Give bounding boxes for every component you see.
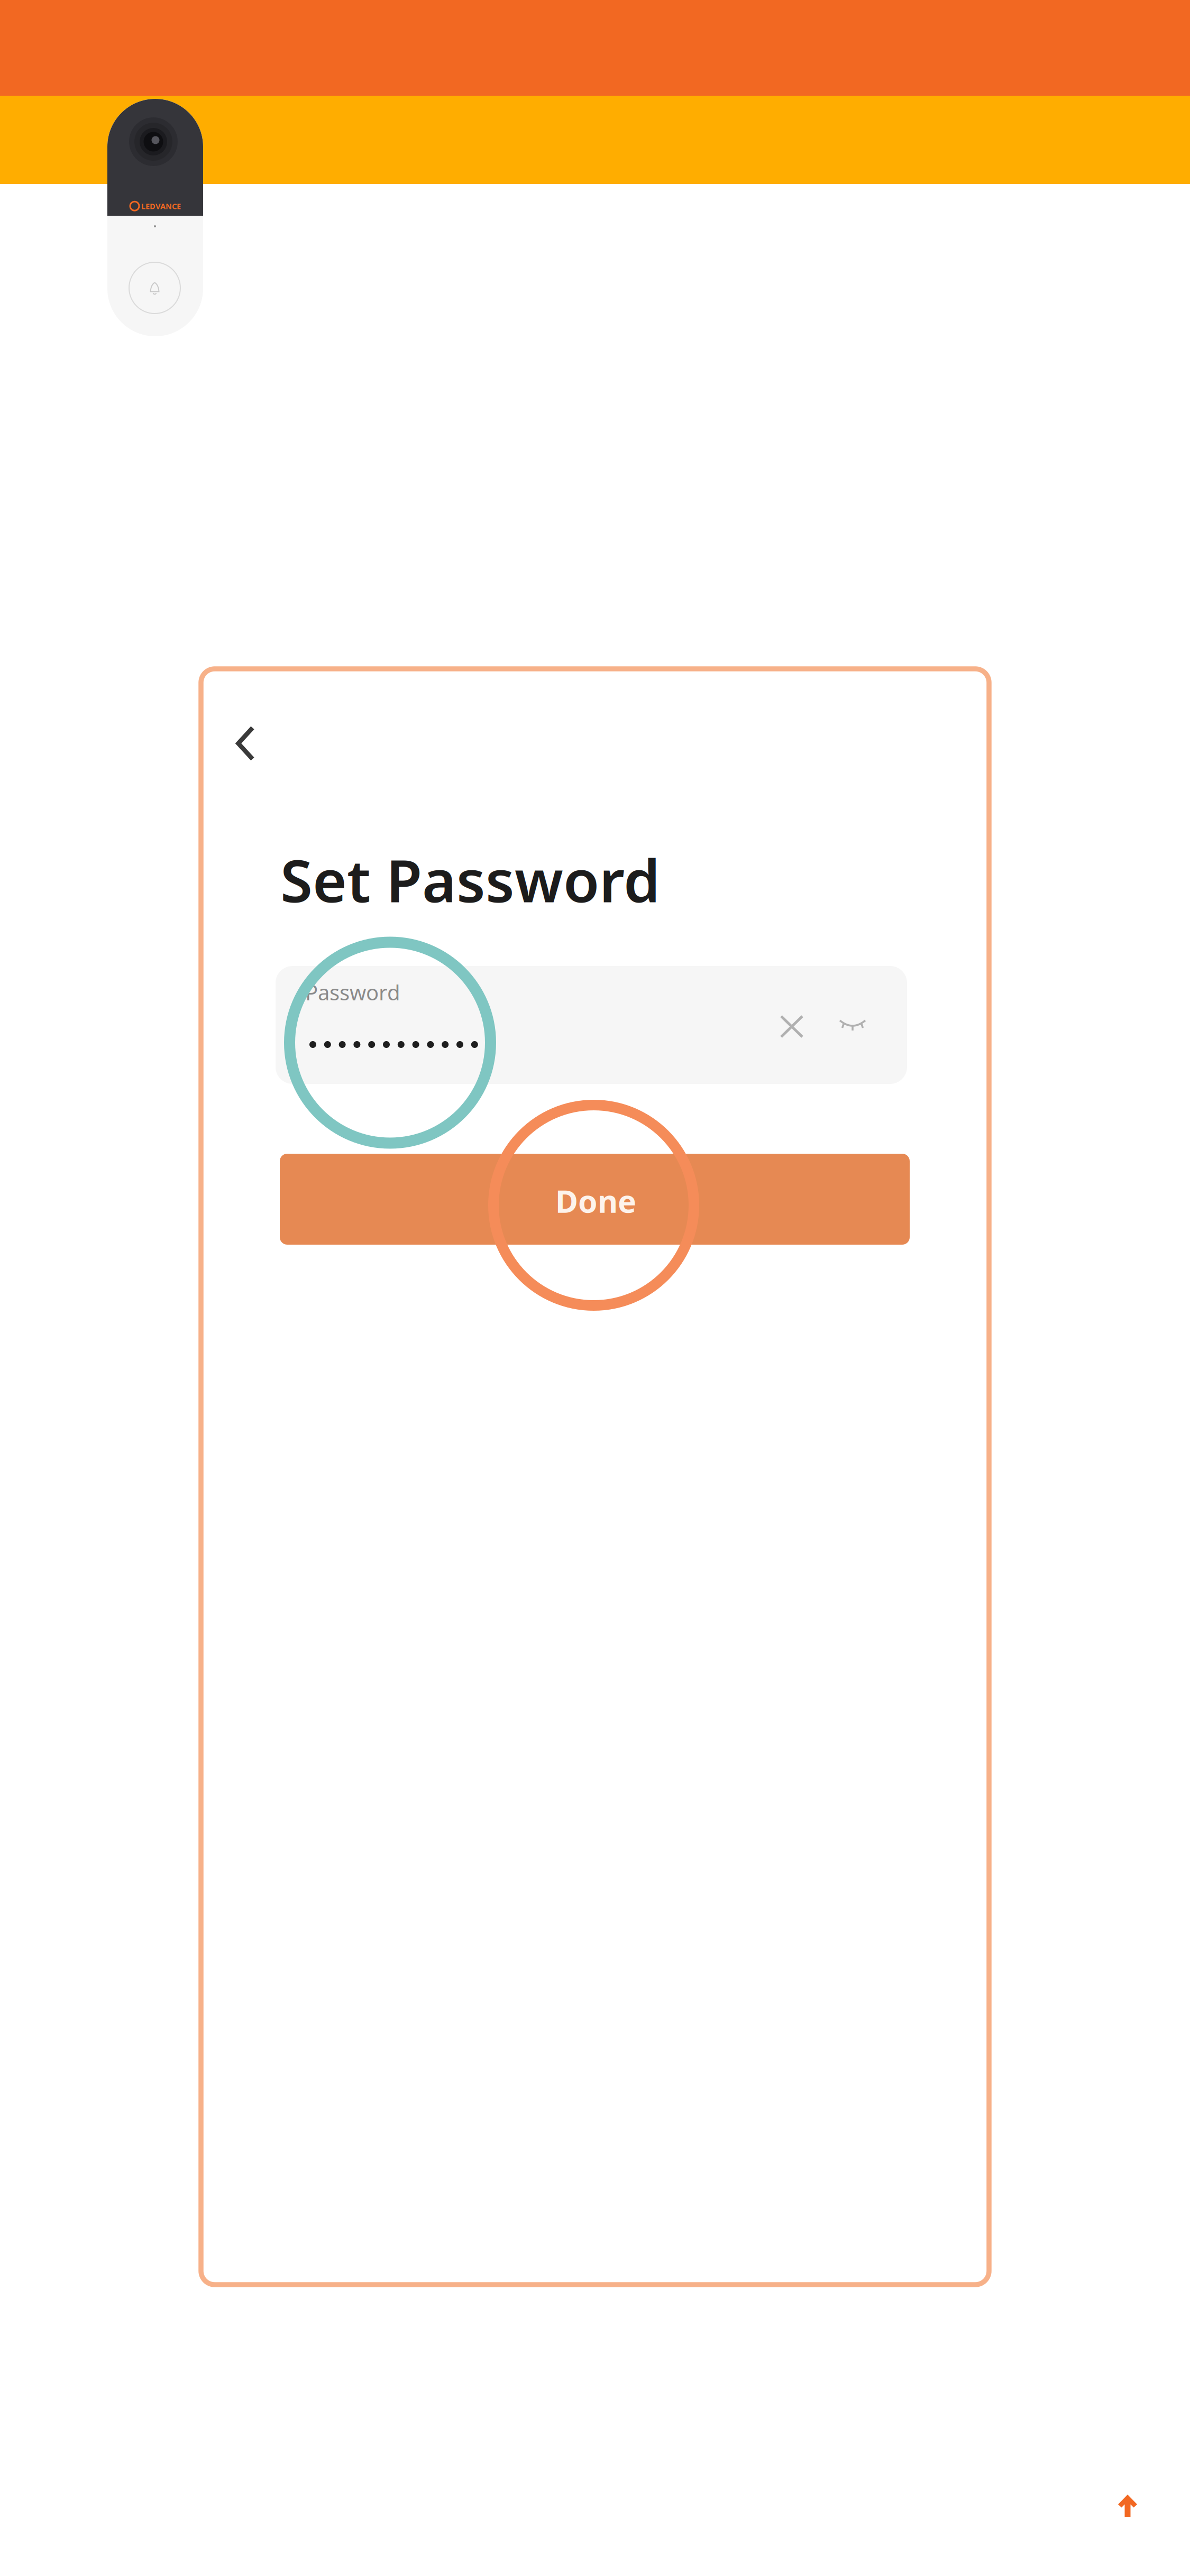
button[interactable]: Scroll to top [1118,2495,1137,2517]
staticText: Set Password [280,841,660,918]
staticText: Done [555,1180,636,1221]
button[interactable]: Done [280,1154,910,1245]
staticText: LEDVANCE [141,201,181,211]
staticText: Password [305,978,400,1006]
button[interactable]: Back [216,714,274,772]
button[interactable]: Clear [780,1015,804,1038]
button[interactable]: Show password [839,1019,866,1032]
